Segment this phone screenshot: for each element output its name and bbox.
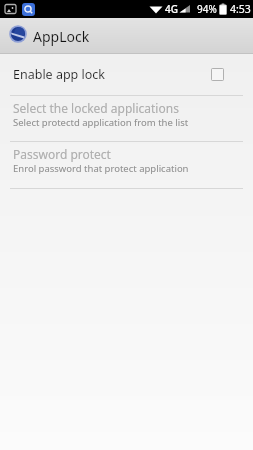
staticText: Select the locked applications bbox=[13, 100, 179, 116]
staticText: 4:53 bbox=[230, 2, 251, 16]
staticText: 94% bbox=[197, 2, 217, 16]
button[interactable]: Enable app lock bbox=[0, 54, 253, 95]
staticText: Select protectd application from the lis… bbox=[13, 116, 189, 129]
staticText: Password protect bbox=[13, 146, 111, 162]
staticText: 4G bbox=[165, 2, 178, 16]
staticText: Enable app lock bbox=[13, 66, 106, 83]
staticText: AppLock bbox=[33, 27, 90, 46]
button[interactable]: Select the locked applications bbox=[0, 96, 253, 141]
staticText: Enrol password that protect application bbox=[13, 162, 189, 175]
button[interactable]: Password protect bbox=[0, 142, 253, 188]
